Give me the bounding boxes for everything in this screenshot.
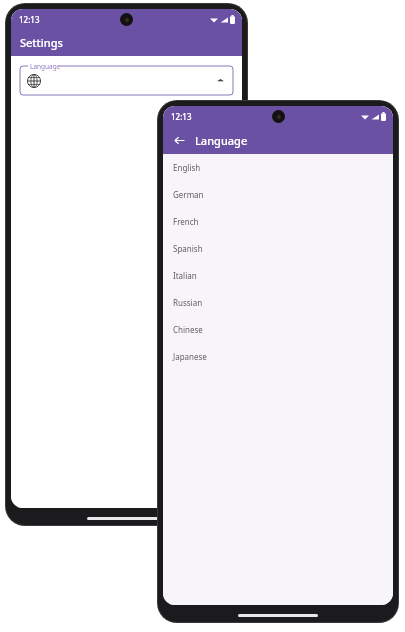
button[interactable]: Russian (163, 289, 393, 316)
button[interactable]: French (163, 208, 393, 235)
staticText: Italian (173, 270, 197, 281)
staticText: Japanese (173, 351, 207, 362)
staticText: Russian (173, 297, 203, 308)
button[interactable]: English (163, 154, 393, 181)
staticText: Chinese (173, 324, 203, 335)
staticText: English (173, 162, 201, 173)
staticText: Language (195, 133, 248, 148)
button[interactable]: Italian (163, 262, 393, 289)
staticText: Settings (20, 35, 63, 50)
button[interactable]: Spanish (163, 235, 393, 262)
staticText: 12:13 (171, 111, 192, 122)
button[interactable]: Language (20, 62, 233, 95)
button[interactable]: Japanese (163, 343, 393, 370)
staticText: Language (30, 62, 61, 71)
button[interactable]: Back (169, 130, 189, 150)
staticText: French (173, 216, 199, 227)
other: Language (27, 74, 41, 88)
button[interactable]: Chinese (163, 316, 393, 343)
staticText: German (173, 189, 204, 200)
staticText: 12:13 (19, 14, 40, 25)
staticText: Spanish (173, 243, 203, 254)
button[interactable]: German (163, 181, 393, 208)
